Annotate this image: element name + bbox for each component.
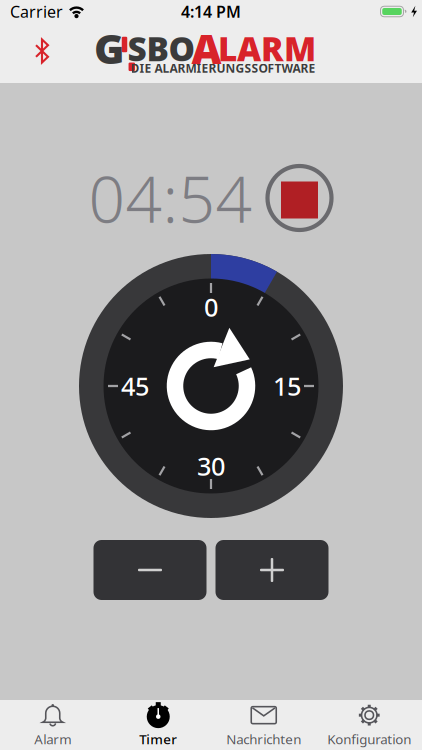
staticText: SBO [127,26,195,70]
button[interactable]: Increase timer [215,540,328,600]
button[interactable]: Alarm [0,700,105,749]
button[interactable]: Konfiguration [316,700,422,749]
staticText: 45 [121,369,149,403]
staticText: DIE ALARMIERUNGSSOFTWARE [130,60,315,76]
staticText: Konfiguration [327,730,411,748]
staticText: A [191,21,221,75]
staticText: Timer [139,730,177,748]
staticText: 4:14 PM [181,1,241,22]
staticText: LARM [218,26,316,70]
button[interactable]: Nachrichten [211,700,316,749]
staticText: G [94,21,125,75]
button[interactable]: Bluetooth [0,41,50,65]
button[interactable]: Decrease timer [93,540,206,600]
button[interactable]: Stop [265,164,333,232]
staticText: 04:54 [88,155,252,240]
staticText: 0 [204,290,218,324]
button[interactable]: Timer [105,700,211,749]
staticText: 15 [273,369,301,403]
staticText: 30 [197,449,225,483]
staticText: Carrier [10,1,63,22]
staticText: Alarm [34,730,71,748]
staticText: Nachrichten [226,730,301,748]
